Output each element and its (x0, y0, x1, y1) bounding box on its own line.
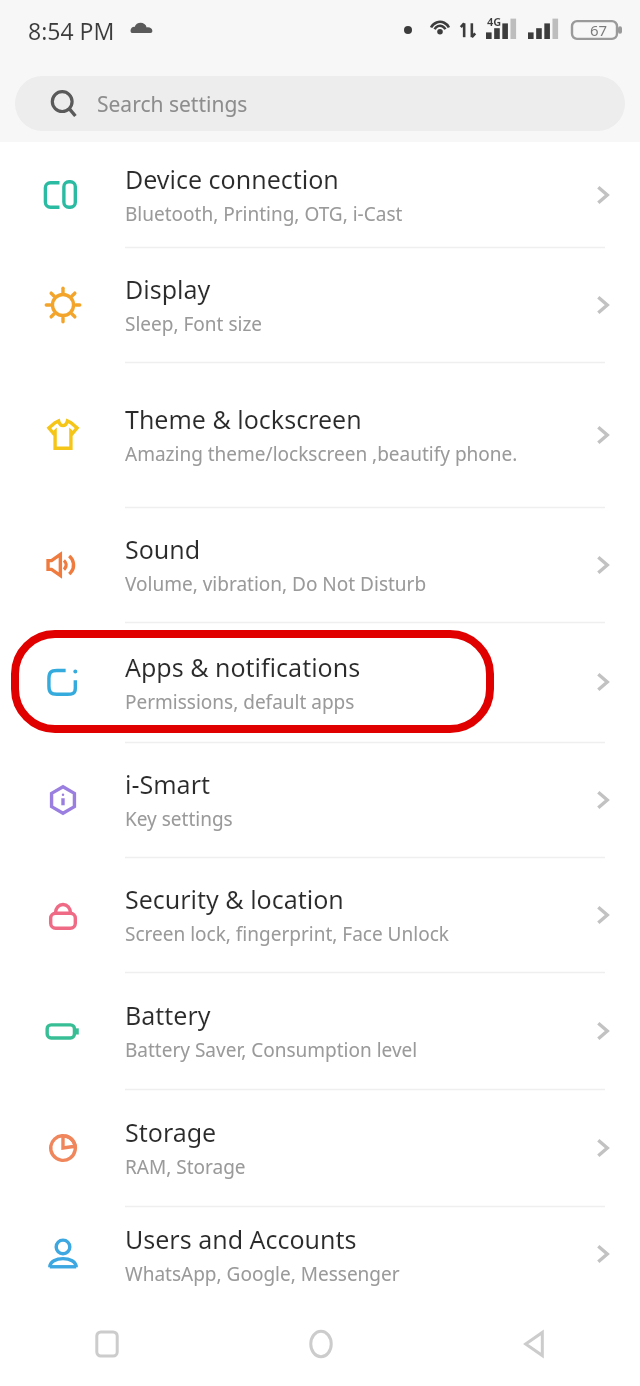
staticText: Sound (125, 532, 201, 566)
staticText: i-Smart (125, 767, 210, 801)
staticText: Sleep, Font size (125, 311, 263, 337)
staticText: Device connection (125, 162, 339, 196)
button[interactable]: Recent apps (0, 1302, 214, 1386)
staticText: RAM, Storage (125, 1154, 246, 1180)
staticText: Search settings (97, 90, 248, 119)
staticText: Amazing theme/lockscreen ,beautify phone… (125, 441, 518, 467)
staticText: Battery (125, 998, 211, 1032)
staticText: 67 (590, 20, 608, 40)
staticText: Users and Accounts (125, 1222, 357, 1256)
staticText: Permissions, default apps (125, 689, 355, 715)
button[interactable]: Search settings (15, 76, 625, 131)
staticText: Screen lock, fingerprint, Face Unlock (125, 921, 449, 947)
button[interactable]: Theme & lockscreen (0, 362, 640, 507)
staticText: Volume, vibration, Do Not Disturb (125, 571, 427, 597)
button[interactable]: Home (214, 1302, 427, 1386)
staticText: Key settings (125, 806, 233, 832)
button[interactable]: Storage (0, 1089, 640, 1206)
button[interactable]: i-Smart (0, 742, 640, 857)
staticText: WhatsApp, Google, Messenger (125, 1261, 400, 1287)
staticText: Theme & lockscreen (125, 402, 362, 436)
staticText: Storage (125, 1115, 217, 1149)
staticText: 4G (487, 14, 502, 29)
staticText: Security & location (125, 882, 344, 916)
button[interactable]: Display (0, 247, 640, 362)
button[interactable]: Device connection (0, 142, 640, 247)
button[interactable]: Back (427, 1302, 640, 1386)
staticText: Bluetooth, Printing, OTG, i-Cast (125, 201, 403, 227)
staticText: Display (125, 272, 211, 306)
button[interactable]: Users and Accounts (0, 1206, 640, 1302)
staticText: 8:54 PM (28, 15, 115, 46)
staticText: Apps & notifications (125, 650, 361, 684)
button[interactable]: Battery (0, 972, 640, 1089)
button[interactable]: Apps & notifications (0, 622, 640, 742)
button[interactable]: Security & location (0, 857, 640, 972)
staticText: Battery Saver, Consumption level (125, 1037, 418, 1063)
button[interactable]: Sound (0, 507, 640, 622)
